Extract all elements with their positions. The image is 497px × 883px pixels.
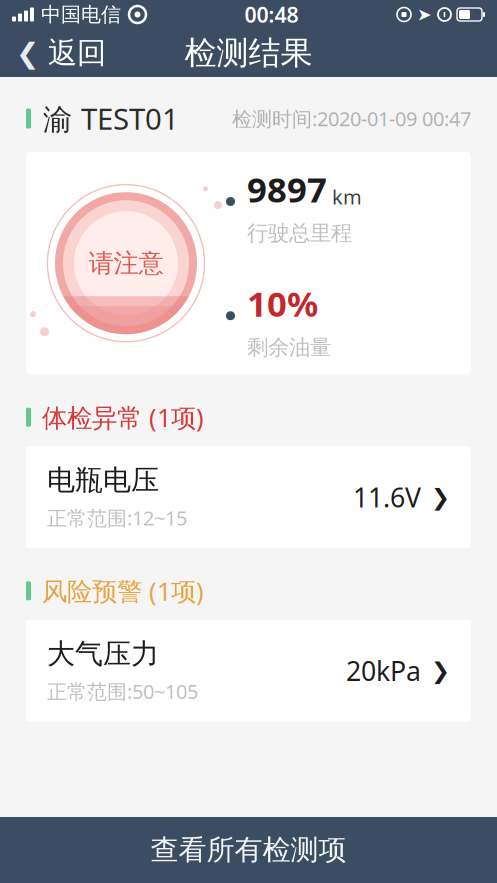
staticText: 检测时间:2020-01-09 00:47 — [232, 105, 471, 132]
staticText: ❯ — [431, 484, 450, 510]
staticText: km — [327, 183, 362, 210]
staticText: 行驶总里程 — [247, 220, 352, 246]
staticText: 请注意 — [88, 248, 163, 279]
staticText: 风险预警 (1项) — [42, 574, 204, 608]
staticText: 大气压力 — [47, 637, 159, 671]
button[interactable]: 查看所有检测项 — [0, 817, 497, 883]
button[interactable]: 电瓶电压 — [26, 446, 471, 548]
button[interactable]: 大气压力 — [26, 620, 471, 722]
staticText: 10% — [247, 280, 318, 326]
staticText: 中国电信 — [41, 2, 121, 27]
staticText: ❯ — [431, 658, 450, 683]
staticText: 电瓶电压 — [47, 463, 159, 497]
staticText: 剩余油量 — [247, 334, 331, 360]
staticText: 正常范围:50~105 — [47, 678, 198, 705]
staticText: 检测结果 — [184, 33, 312, 73]
staticText: 20kPa — [346, 653, 421, 688]
staticText: 00:48 — [244, 0, 298, 29]
staticText: 正常范围:12~15 — [47, 504, 187, 531]
staticText: 查看所有检测项 — [150, 833, 346, 867]
staticText: 返回 — [48, 35, 106, 71]
staticText: 渝 TEST01 — [43, 99, 179, 138]
staticText: ❮ — [16, 37, 39, 69]
staticText: 11.6V — [353, 479, 421, 515]
staticText: ➤ — [417, 5, 432, 24]
button[interactable]: ❮ — [0, 29, 122, 77]
staticText: 9897 — [247, 166, 327, 212]
staticText: 体检异常 (1项) — [42, 400, 204, 434]
